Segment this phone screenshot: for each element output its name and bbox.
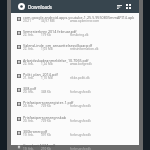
staticText: rettsinformation.dk [70, 47, 99, 51]
staticText: 179 Kb [41, 33, 51, 37]
staticText: com.google.android.apps.youtube-1.25.5.9… [23, 15, 137, 20]
staticText: 19. feb. [23, 133, 34, 137]
staticText: Downloads [28, 4, 53, 10]
staticText: 23:21 [23, 19, 31, 23]
staticText: Prisfastpersonsregister-1.pdf [23, 100, 137, 105]
staticText: 729 Kb [41, 119, 51, 123]
staticText: 22. feb. [23, 33, 34, 37]
staticText: forbrugsfor.dk [70, 147, 91, 150]
staticText: ValensLinde_om_ansaettelsesvilkaar.pdf [23, 43, 137, 48]
staticText: rikke.politi.dk [70, 76, 90, 80]
staticText: 22. feb. [23, 47, 34, 51]
button[interactable]: Arbejdsskadeanmeldelse_10.7065.pdf [11, 57, 139, 71]
staticText: 1,03 Mb [41, 47, 53, 51]
staticText: Arbejdsskadeanmeldelse_10.7065.pdf [23, 58, 137, 63]
staticText: 1,10 Mb [41, 76, 53, 80]
staticText: forbrugsfor.dk [70, 133, 91, 137]
staticText: 20. feb. [23, 104, 34, 108]
staticText: forbrugsfor.dk [70, 119, 91, 123]
staticText: 20. feb. [23, 119, 34, 123]
staticText: 20. feb. [23, 90, 34, 94]
button[interactable]: Politi_plan_2014.pdf [11, 71, 139, 85]
staticText: Prisfastpersonsregnskab [23, 115, 137, 120]
button[interactable]: Downloads [18, 3, 25, 10]
staticText: 729 Kb [41, 104, 51, 108]
staticText: Semesterbrev 2014 februar.pdf [23, 29, 137, 34]
staticText: 210 Kb [41, 147, 51, 150]
button[interactable]: 308.pdf [11, 85, 139, 99]
staticText: 397 Kb [41, 133, 51, 137]
staticText: forbrugsfor.dk [70, 104, 91, 108]
button[interactable]: Semesterbrev 2014 februar.pdf [11, 28, 139, 42]
button[interactable]: com.google.android.apps.youtube-1.25.5.9… [11, 14, 139, 28]
staticText: 19. feb. [23, 147, 34, 150]
button[interactable]: 300kroner.pdf [11, 128, 139, 142]
staticText: 348 Kb [41, 90, 51, 94]
staticText: 34,97 MB [41, 19, 55, 23]
staticText: 300kroner.pdf [23, 129, 137, 134]
staticText: Politi_plan_2014.pdf [23, 72, 137, 77]
staticText: 1,24 Mb [41, 62, 53, 66]
button[interactable]: ValensLinde_om_ansaettelsesvilkaar.pdf [11, 42, 139, 56]
staticText: 21. feb. [23, 76, 34, 80]
staticText: 22. feb. [23, 62, 34, 66]
staticText: Gavekort 1324.pdf [23, 143, 137, 148]
button[interactable]: Gavekort 1324.pdf [11, 142, 139, 150]
button[interactable]: Sort [115, 0, 124, 13]
staticText: www.borger.dk [70, 62, 92, 66]
button[interactable]: Grid view [124, 0, 133, 13]
staticText: 308.pdf [23, 86, 137, 91]
button[interactable]: Prisfastpersonsregister-1.pdf [11, 99, 139, 113]
staticText: forsikring.dk [70, 33, 89, 37]
staticText: www.apkmirror.com [70, 19, 100, 23]
staticText: forbrugsfor.dk [70, 90, 91, 94]
button[interactable]: Prisfastpersonsregnskab [11, 114, 139, 128]
